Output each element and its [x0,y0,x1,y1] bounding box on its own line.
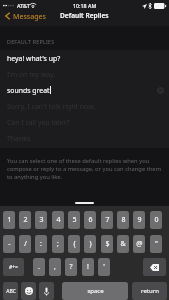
staticText: 8 [121,215,126,225]
button[interactable]: , [49,258,61,276]
button[interactable]: space [62,282,128,300]
button[interactable]: Dictate [39,282,54,300]
staticText: return [141,287,159,295]
staticText: - [8,239,11,249]
staticText: 3 [39,215,44,225]
button[interactable]: $ [101,235,113,253]
staticText: , [54,262,56,272]
staticText: I'm on my way. [7,70,56,79]
staticText: 5 [72,215,77,225]
staticText: @ [136,239,143,249]
staticText: : [40,239,42,249]
staticText: heya! what's up? [7,54,61,63]
staticText: Default Replies [60,11,109,20]
staticText: 10:18 AM [73,2,97,9]
staticText: ; [57,239,59,249]
button[interactable]: 8 [117,211,129,229]
staticText: 4 [56,215,61,225]
button[interactable]: ; [52,235,64,253]
button[interactable]: #+= [3,258,24,276]
button[interactable]: ) [84,235,96,253]
button[interactable]: ABC [3,282,18,300]
staticText: ABC [6,288,16,295]
staticText: 2 [23,215,28,225]
staticText: ! [87,262,89,272]
button[interactable]: 1 [3,211,15,229]
staticText: ? [69,262,73,272]
button[interactable]: ( [68,235,80,253]
button[interactable]: 4 [52,211,64,229]
staticText: 1 [7,215,12,225]
staticText: / [24,239,27,249]
staticText: 9 [137,215,142,225]
button[interactable]: 2 [19,211,31,229]
staticText: You can select one of these default repl… [7,157,165,181]
button[interactable]: ? [65,258,77,276]
staticText: 0 [154,215,159,225]
staticText: Sorry, I can't talk right now. [7,102,96,111]
button[interactable]: sounds great [0,82,169,98]
button[interactable]: 9 [133,211,145,229]
staticText: Messages [13,11,46,21]
button[interactable]: 7 [101,211,113,229]
staticText: Thanks [7,134,31,143]
staticText: sounds great [7,86,50,95]
button[interactable]: ! [82,258,94,276]
staticText: Can I call you later? [7,118,70,127]
button[interactable]: " [150,235,162,253]
button[interactable]: Delete [143,258,166,276]
staticText: AT&T [17,2,30,9]
staticText: ) [89,239,92,249]
button[interactable]: @ [133,235,145,253]
staticText: $ [105,239,110,249]
staticText: 7 [105,215,110,225]
button[interactable]: heya! what's up? [0,50,169,66]
button[interactable]: return [132,282,167,300]
button[interactable]: Sorry, I can't talk right now. [0,98,169,114]
button[interactable]: Emoji [21,282,36,300]
button[interactable]: : [35,235,47,253]
button[interactable]: & [117,235,129,253]
staticText: 6 [88,215,93,225]
button[interactable]: / [19,235,31,253]
button[interactable]: . [33,258,45,276]
staticText: ' [103,262,105,272]
staticText: & [120,239,126,249]
staticText: " [155,239,158,249]
staticText: . [38,262,40,272]
button[interactable]: 5 [68,211,80,229]
button[interactable]: ' [98,258,110,276]
button[interactable]: 6 [84,211,96,229]
button[interactable]: - [3,235,15,253]
staticText: ( [73,239,76,249]
staticText: #+= [9,264,18,271]
staticText: DEFAULT REPLIES [7,38,55,45]
button[interactable]: 0 [150,211,162,229]
button[interactable]: 3 [35,211,47,229]
button[interactable]: Messages [0,11,46,21]
staticText: space [87,287,104,295]
